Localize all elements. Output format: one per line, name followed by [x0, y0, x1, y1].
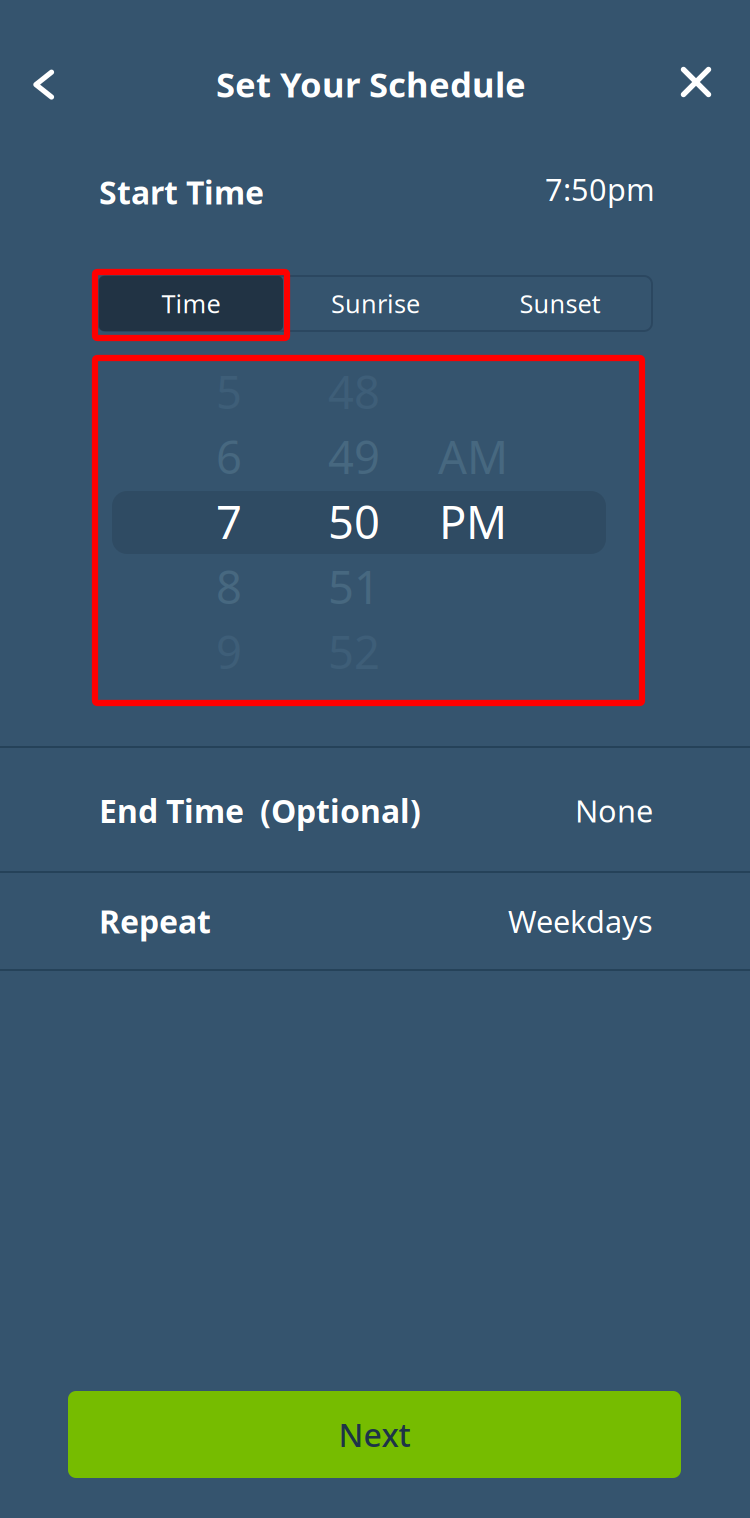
staticText: Weekdays — [508, 901, 653, 941]
staticText: 50 — [328, 491, 380, 552]
button[interactable]: Next — [68, 1391, 681, 1478]
staticText: Repeat — [99, 900, 211, 942]
staticText: 8 — [216, 556, 242, 617]
staticText: Set Your Schedule — [216, 61, 526, 107]
staticText: Start Time — [99, 171, 264, 213]
button[interactable]: Time — [99, 276, 283, 331]
staticText: Next — [338, 1413, 410, 1456]
staticText: 9 — [216, 621, 242, 682]
staticText: 7:50pm — [545, 169, 655, 209]
staticText: 5 — [216, 361, 242, 422]
staticText: None — [575, 790, 653, 831]
staticText: Sunrise — [331, 287, 420, 320]
button[interactable]: Sunset — [468, 276, 652, 331]
staticText: Sunset — [519, 287, 600, 320]
button[interactable]: Back — [8, 49, 80, 121]
button[interactable]: Close — [660, 46, 732, 118]
staticText: End Time (Optional) — [99, 789, 421, 832]
staticText: 49 — [328, 426, 380, 487]
staticText: 7 — [216, 491, 242, 552]
staticText: Time — [161, 287, 220, 320]
button[interactable]: End Time (Optional) — [0, 748, 750, 873]
button[interactable]: Repeat — [0, 873, 750, 969]
staticText: 52 — [328, 621, 380, 682]
staticText: 51 — [328, 556, 380, 617]
staticText: 6 — [216, 426, 242, 487]
staticText: AM — [438, 426, 508, 487]
staticText: 48 — [328, 361, 380, 422]
button[interactable]: Sunrise — [283, 276, 468, 331]
staticText: PM — [439, 491, 507, 552]
